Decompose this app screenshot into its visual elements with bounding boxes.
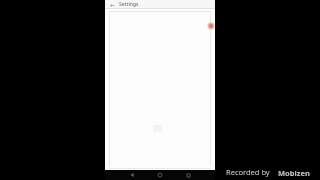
button[interactable]: Settings — [119, 1, 139, 8]
button[interactable]: Back — [127, 170, 137, 180]
staticText: Settings — [119, 1, 139, 8]
staticText: Mobizen — [278, 168, 310, 176]
button[interactable]: Mobizen — [273, 168, 314, 176]
button[interactable]: Home — [155, 170, 165, 180]
button[interactable]: Navigate up — [108, 1, 116, 9]
button[interactable]: Action — [207, 22, 215, 30]
staticText: Recorded by — [226, 167, 270, 177]
button[interactable]: Recent apps — [183, 170, 193, 180]
